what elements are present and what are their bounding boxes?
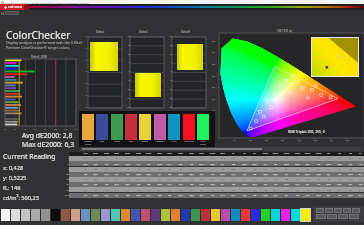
staticText: 128 <box>302 189 313 192</box>
staticText: RGB Triplet: 255, 255, 0 <box>288 129 325 134</box>
staticText: 0 <box>124 70 130 73</box>
staticText: 0,7 <box>330 139 334 142</box>
staticText: 49,9 <box>154 189 165 192</box>
button[interactable]: Action 3 <box>349 214 359 219</box>
staticText: 15 <box>166 44 172 47</box>
staticText: 10 <box>54 127 57 130</box>
staticText: -7,5 <box>143 178 154 181</box>
button[interactable]: Control 1 <box>325 208 333 213</box>
staticText: Avg dE2000: 2,8 <box>22 131 73 140</box>
staticText: 0,20 <box>143 189 154 192</box>
staticText: 8 <box>44 127 46 130</box>
staticText: 5 <box>124 61 130 64</box>
staticText: 0,92 <box>345 173 356 176</box>
staticText: -2,9 <box>196 173 207 176</box>
staticText: 0 <box>4 127 6 130</box>
staticText: -2 <box>81 82 87 85</box>
staticText: 154 <box>217 189 228 192</box>
staticText: -4 <box>81 94 87 97</box>
staticText: 2 <box>14 127 16 130</box>
button[interactable]: Control 0 <box>316 208 324 213</box>
staticText: fL: 146 <box>3 184 21 192</box>
staticText: 136 <box>228 183 239 186</box>
button[interactable]: Control 2 <box>334 208 342 213</box>
staticText: -3,6 <box>186 178 197 181</box>
staticText: 108 <box>175 168 186 171</box>
staticText: 47,7 <box>207 183 218 186</box>
staticText: Meaa <box>196 152 207 155</box>
staticText: CIE 1931 xy <box>277 29 293 33</box>
staticText: 0,24 <box>228 168 239 171</box>
button[interactable]: Action 1 <box>327 214 337 219</box>
staticText: 133 <box>334 194 345 197</box>
staticText: ColorChecker <box>6 28 71 42</box>
staticText: 50,0 <box>345 178 356 181</box>
button[interactable]: Action 2 <box>338 214 348 219</box>
button[interactable]: Session menu <box>1 11 19 15</box>
staticText: Red <box>125 140 137 143</box>
staticText: 29,9 <box>217 178 228 181</box>
button[interactable]: Control 3 <box>343 208 351 213</box>
staticText: 0,2 <box>212 109 216 112</box>
staticText: 113 <box>207 173 218 176</box>
staticText: 0,87 <box>313 168 324 171</box>
staticText: -10 <box>166 88 172 91</box>
staticText: Max dE2000: 6,3 <box>22 140 75 149</box>
staticText: Cyan <box>168 140 180 143</box>
staticText: Targb <box>143 152 154 155</box>
staticText: Targx <box>101 152 112 155</box>
staticText: 100 <box>249 173 260 176</box>
staticText: Display analysis is performed with the X… <box>6 40 83 50</box>
staticText: -15 <box>166 97 172 100</box>
button[interactable]: Control 4 <box>352 208 360 213</box>
staticText: 0,65 <box>239 183 250 186</box>
staticText: 0,25 <box>175 194 186 197</box>
staticText: -2,0 <box>111 173 122 176</box>
staticText: 30,0 <box>217 157 228 160</box>
staticText: 32,2 <box>355 173 364 176</box>
button[interactable]: Action 0 <box>316 214 326 219</box>
staticText: 100% Red <box>183 140 195 143</box>
staticText: RGB <box>60 194 69 197</box>
